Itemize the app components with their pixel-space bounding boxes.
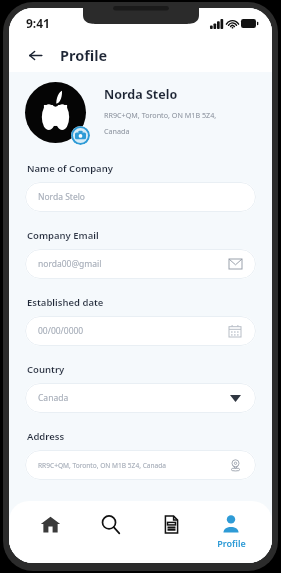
button[interactable]: Change photo	[71, 126, 90, 145]
staticText: Address	[27, 430, 65, 443]
button[interactable]: 00/00/0000	[25, 316, 256, 346]
button[interactable]: Home	[24, 512, 76, 537]
staticText: Norda Stelo	[104, 86, 178, 103]
staticText: Name of Company	[27, 162, 113, 175]
staticText: Established date	[27, 296, 104, 309]
button[interactable]: RR9C+QM, Toronto, ON M1B 5Z4, Canada	[25, 450, 256, 480]
button[interactable]: Documents	[145, 512, 197, 537]
staticText: Profile	[60, 45, 108, 65]
staticText: Canada	[104, 126, 130, 136]
staticText: RR9C+QM, Toronto, ON M1B 5Z4,	[104, 110, 217, 120]
button[interactable]: Canada	[25, 383, 256, 413]
staticText: Profile	[217, 537, 246, 549]
staticText: RR9C+QM, Toronto, ON M1B 5Z4, Canada	[38, 461, 227, 470]
staticText: 9:41	[26, 15, 50, 31]
button[interactable]: Back	[23, 43, 47, 67]
staticText: norda00@gmail	[38, 258, 227, 270]
staticText: Company Email	[27, 229, 99, 242]
button[interactable]: Norda Stelo	[25, 182, 256, 212]
button[interactable]: Profile	[205, 512, 257, 551]
staticText: Norda Stelo	[38, 191, 243, 203]
button[interactable]: Search	[84, 512, 136, 537]
staticText: Country	[27, 363, 65, 376]
button[interactable]: norda00@gmail	[25, 249, 256, 279]
staticText: 00/00/0000	[38, 325, 227, 337]
staticText: Canada	[38, 392, 227, 404]
